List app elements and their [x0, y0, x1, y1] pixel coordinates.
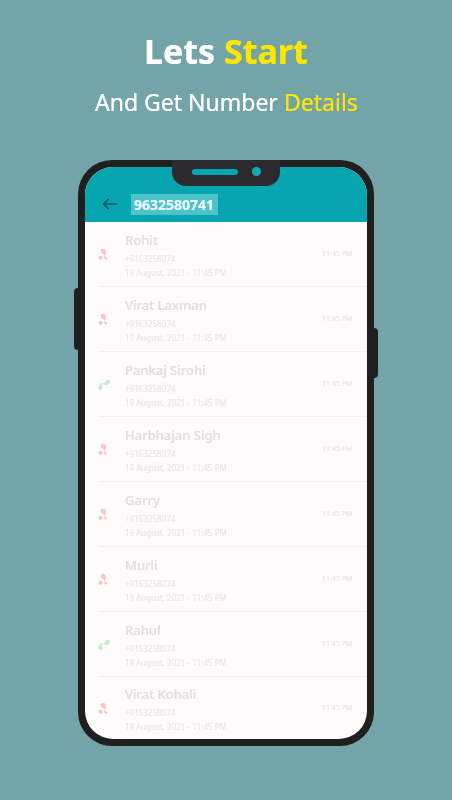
staticText: Lets — [144, 28, 224, 74]
staticText: 11:45 PM — [322, 509, 353, 519]
staticText: Pankaj Sirohi — [125, 361, 206, 379]
staticText: Details — [284, 86, 358, 117]
staticText: 11:45 PM — [322, 249, 353, 259]
staticText: 19 August, 2021 - 11:45 PM — [125, 332, 227, 343]
button[interactable]: Pankaj Sirohi — [85, 352, 367, 416]
staticText: 11:45 PM — [322, 379, 353, 389]
button[interactable]: Murli — [85, 547, 367, 611]
button[interactable]: Back — [97, 191, 123, 217]
staticText: 19 August, 2021 - 11:45 PM — [125, 527, 227, 538]
staticText: 19 August, 2021 - 11:45 PM — [125, 397, 227, 408]
staticText: 9632580741 — [134, 195, 215, 214]
staticText: 11:45 PM — [322, 314, 353, 324]
staticText: Rohit — [125, 231, 158, 249]
staticText: +9163258074 — [125, 513, 176, 524]
staticText: +9163258074 — [125, 253, 176, 264]
staticText: 19 August, 2021 - 11:45 PM — [125, 721, 227, 732]
staticText: +9163258074 — [125, 578, 176, 589]
staticText: 11:45 PM — [322, 444, 353, 454]
staticText: Harbhajan Sigh — [125, 426, 221, 444]
staticText: +9163258074 — [125, 383, 176, 394]
staticText: 19 August, 2021 - 11:45 PM — [125, 657, 227, 668]
staticText: Rahul — [125, 621, 161, 639]
staticText: 11:45 PM — [322, 639, 353, 649]
staticText: 19 August, 2021 - 11:45 PM — [125, 592, 227, 603]
button[interactable]: Harbhajan Sigh — [85, 417, 367, 481]
button[interactable]: Rohit — [85, 222, 367, 286]
button[interactable]: Rahul — [85, 612, 367, 676]
button[interactable]: Garry — [85, 482, 367, 546]
staticText: 19 August, 2021 - 11:45 PM — [125, 267, 227, 278]
staticText: 19 August, 2021 - 11:45 PM — [125, 462, 227, 473]
button[interactable]: Virat Laxman — [85, 287, 367, 351]
staticText: Murli — [125, 556, 158, 574]
staticText: Garry — [125, 491, 160, 509]
staticText: +9163258074 — [125, 707, 176, 718]
staticText: +9163258074 — [125, 448, 176, 459]
staticText: +9163258074 — [125, 318, 176, 329]
button[interactable]: Virat Kohali — [85, 677, 367, 739]
staticText: Virat Laxman — [125, 296, 207, 314]
staticText: 11:45 PM — [322, 703, 353, 713]
staticText: And Get Number — [95, 86, 284, 117]
staticText: 11:45 PM — [322, 574, 353, 584]
staticText: Virat Kohali — [125, 685, 197, 703]
staticText: +9163258074 — [125, 643, 176, 654]
staticText: Start — [224, 28, 308, 74]
